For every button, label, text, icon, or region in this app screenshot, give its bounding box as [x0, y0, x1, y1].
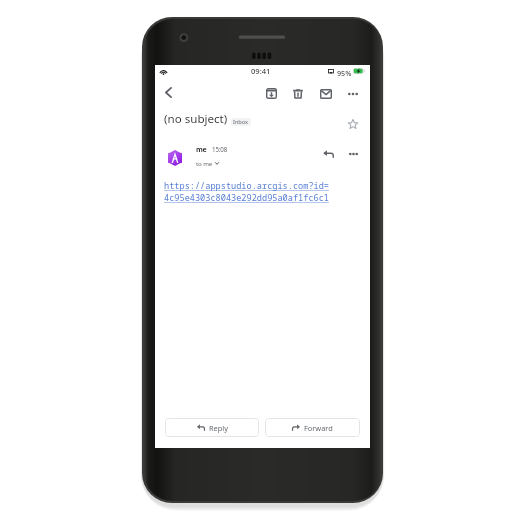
staticText: Reply [209, 423, 228, 433]
button[interactable]: Reply [319, 145, 337, 163]
staticText: 15:08 [212, 145, 228, 153]
button[interactable]: Star [344, 115, 362, 133]
button[interactable]: Delete [289, 85, 307, 103]
staticText: https://appstudio.arcgis.com?id= [164, 180, 330, 192]
button[interactable]: Back [159, 83, 177, 101]
staticText: (no subject) [164, 111, 228, 127]
staticText: Forward [304, 423, 333, 433]
button[interactable]: Archive [262, 84, 280, 102]
staticText: to me [196, 159, 213, 167]
staticText: 09:41 [251, 66, 271, 76]
button[interactable]: Inbox [231, 118, 251, 126]
button[interactable]: More options [344, 85, 362, 103]
staticText: 4c95e4303c8043e292dd95a0af1fc6c1 [164, 192, 330, 204]
staticText: Inbox [233, 118, 249, 126]
button[interactable]: https://appstudio.arcgis.com?id= [164, 180, 379, 204]
staticText: 95% [337, 68, 352, 78]
staticText: me [196, 145, 207, 155]
button[interactable]: Mark as unread [317, 85, 335, 103]
button[interactable]: More options [344, 145, 362, 163]
button[interactable]: Reply [165, 418, 259, 437]
button[interactable]: Forward [265, 418, 360, 437]
